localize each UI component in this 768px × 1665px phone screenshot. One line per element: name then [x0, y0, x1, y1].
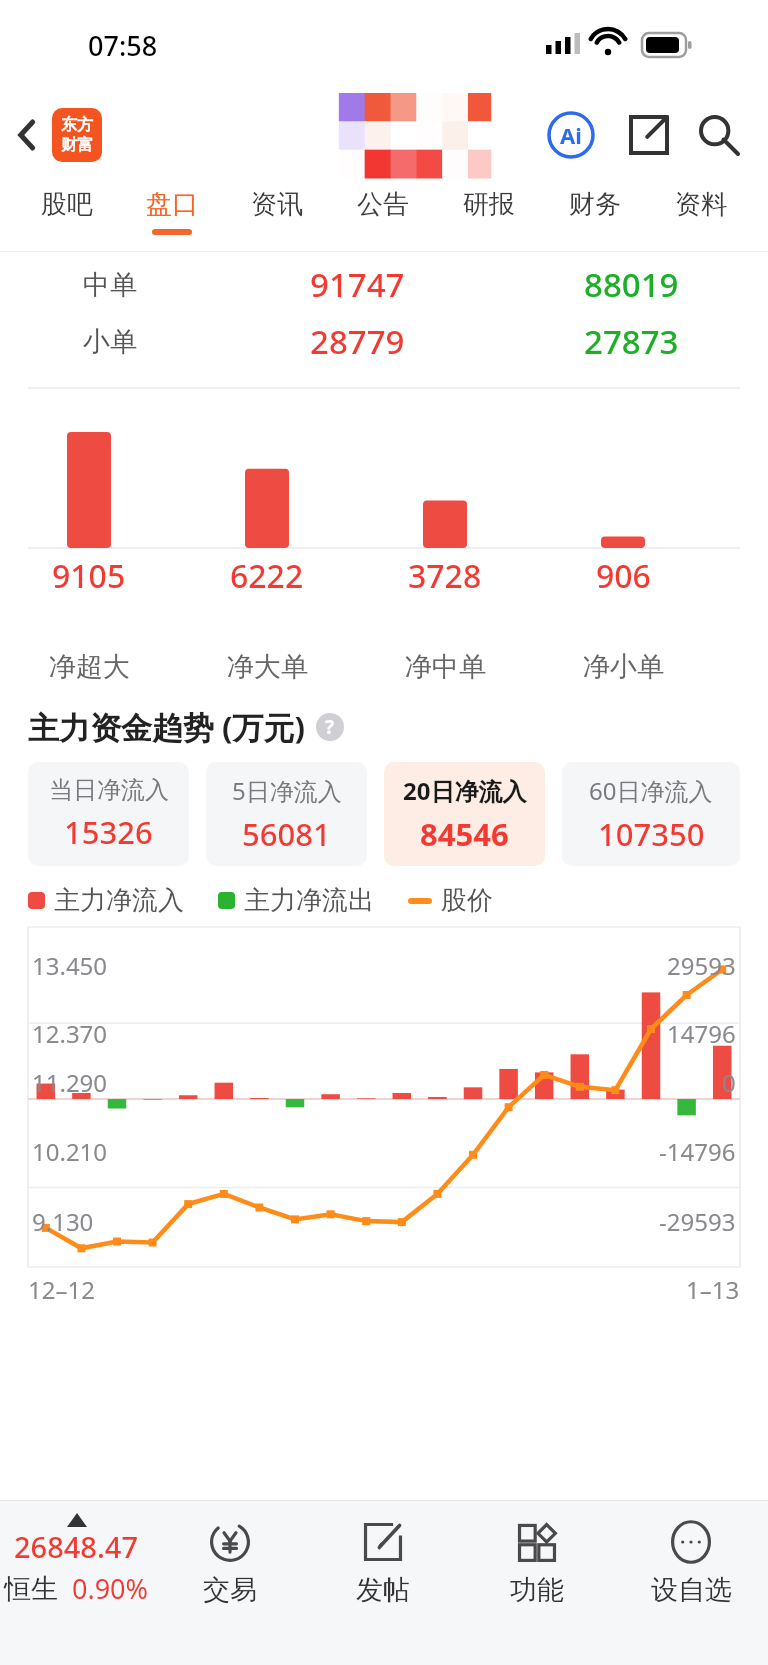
staticText: 3728	[408, 554, 482, 598]
button[interactable]: 60日净流入	[562, 762, 740, 866]
staticText: 净小单	[583, 650, 664, 684]
staticText: 研报	[463, 188, 515, 221]
button[interactable]: 主力资金趋势 (万元)	[28, 706, 768, 748]
staticText: 资料	[675, 188, 727, 221]
staticText: 财务	[569, 188, 621, 221]
staticText: 13.450	[32, 949, 108, 982]
staticText: -14796	[659, 1135, 736, 1168]
staticText: 主力净流出	[244, 884, 374, 917]
staticText: 资讯	[251, 188, 303, 221]
staticText: 26848.47	[14, 1527, 139, 1566]
staticText: 28779	[310, 319, 405, 364]
staticText: 当日净流入	[49, 775, 169, 805]
staticText: 14796	[667, 1017, 736, 1050]
staticText: 主力资金趋势 (万元)	[28, 706, 306, 748]
staticText: ?	[325, 714, 335, 740]
staticText: 财富	[61, 135, 93, 155]
button[interactable]: 设自选	[614, 1501, 768, 1665]
staticText: 60日净流入	[589, 774, 713, 807]
staticText: 中单	[83, 268, 137, 302]
button[interactable]: 盘口	[119, 180, 224, 252]
staticText: 功能	[510, 1573, 564, 1607]
staticText: 9.130	[32, 1205, 94, 1238]
staticText: 10.210	[32, 1135, 108, 1168]
staticText: 29593	[667, 949, 736, 982]
button[interactable]: 交易	[153, 1501, 306, 1665]
staticText: 1–13	[686, 1273, 740, 1306]
staticText: 27873	[584, 319, 679, 364]
staticText: 91747	[310, 262, 405, 307]
staticText: 主力净流入	[54, 884, 184, 917]
staticText: 07:58	[88, 27, 158, 64]
button[interactable]: Search	[690, 106, 748, 164]
staticText: 88019	[584, 262, 679, 307]
staticText: 恒生	[4, 1572, 58, 1606]
button[interactable]: 东方财富	[52, 108, 102, 162]
staticText: 小单	[83, 325, 137, 359]
button[interactable]: Back	[0, 107, 56, 163]
staticText: 15326	[64, 811, 153, 853]
button[interactable]: 股吧	[14, 180, 119, 252]
staticText: Ai	[560, 120, 582, 150]
button[interactable]: Share	[620, 106, 678, 164]
button[interactable]: 26848.47	[0, 1501, 153, 1665]
button[interactable]: 5日净流入	[206, 762, 367, 866]
button[interactable]: 20日净流入	[384, 762, 545, 866]
staticText: 107350	[598, 813, 705, 855]
button[interactable]: 资料	[648, 180, 754, 252]
button[interactable]: AI	[540, 104, 602, 166]
staticText: 设自选	[651, 1573, 732, 1607]
staticText: 56081	[242, 813, 331, 855]
button[interactable]: 资讯	[224, 180, 330, 252]
staticText: 9105	[52, 554, 126, 598]
staticText: 东方	[61, 115, 93, 135]
staticText: 发帖	[356, 1573, 410, 1607]
button[interactable]: 当日净流入	[28, 762, 189, 866]
staticText: -29593	[659, 1205, 736, 1238]
staticText: 0.90%	[72, 1570, 149, 1607]
staticText: 股价	[441, 884, 493, 917]
staticText: 净大单	[227, 650, 308, 684]
staticText: 906	[596, 554, 651, 598]
staticText: 股吧	[41, 188, 93, 221]
button[interactable]: 公告	[330, 180, 436, 252]
staticText: 12–12	[28, 1273, 95, 1306]
staticText: 11.290	[32, 1066, 108, 1099]
staticText: 5日净流入	[232, 774, 342, 807]
staticText: 净中单	[405, 650, 486, 684]
staticText: 净超大	[49, 650, 130, 684]
staticText: 交易	[203, 1573, 257, 1607]
button[interactable]: 发帖	[306, 1501, 460, 1665]
staticText: 6222	[230, 554, 304, 598]
staticText: 12.370	[32, 1017, 108, 1050]
button[interactable]: 功能	[460, 1501, 614, 1665]
staticText: 0	[722, 1066, 736, 1099]
button[interactable]: 研报	[436, 180, 542, 252]
staticText: 20日净流入	[403, 774, 527, 807]
staticText: 84546	[420, 813, 509, 855]
staticText: 公告	[357, 188, 409, 221]
staticText: 盘口	[146, 188, 198, 221]
button[interactable]: 财务	[542, 180, 648, 252]
